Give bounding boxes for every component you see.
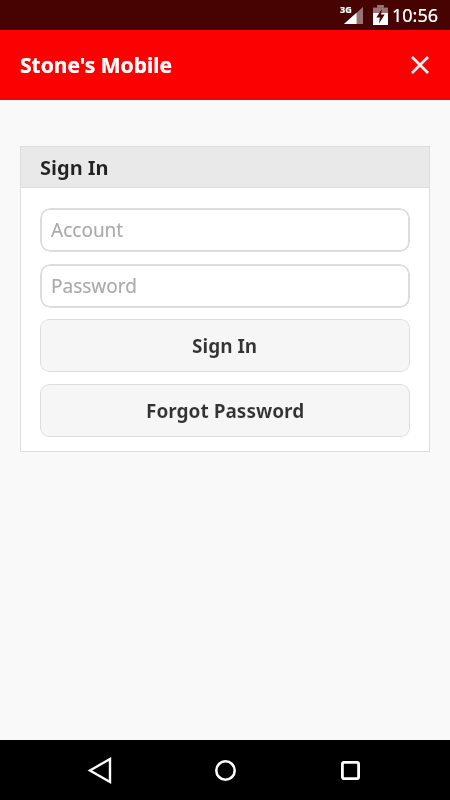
button[interactable] [328,748,372,792]
staticText: Account [51,217,124,243]
staticText: Sign In [192,333,258,359]
staticText: Password [51,273,137,299]
button[interactable] [404,49,436,81]
staticText: 10:56 [392,3,439,28]
button[interactable]: Forgot Password [40,384,410,437]
button[interactable] [78,748,122,792]
staticText: 3G [340,3,352,15]
staticText: Forgot Password [146,398,305,424]
button[interactable] [203,748,247,792]
staticText: Stone's Mobile [20,51,173,80]
button[interactable]: Account [40,208,410,252]
button[interactable]: Password [40,264,410,308]
staticText: Sign In [40,154,109,181]
button[interactable]: Sign In [40,319,410,372]
